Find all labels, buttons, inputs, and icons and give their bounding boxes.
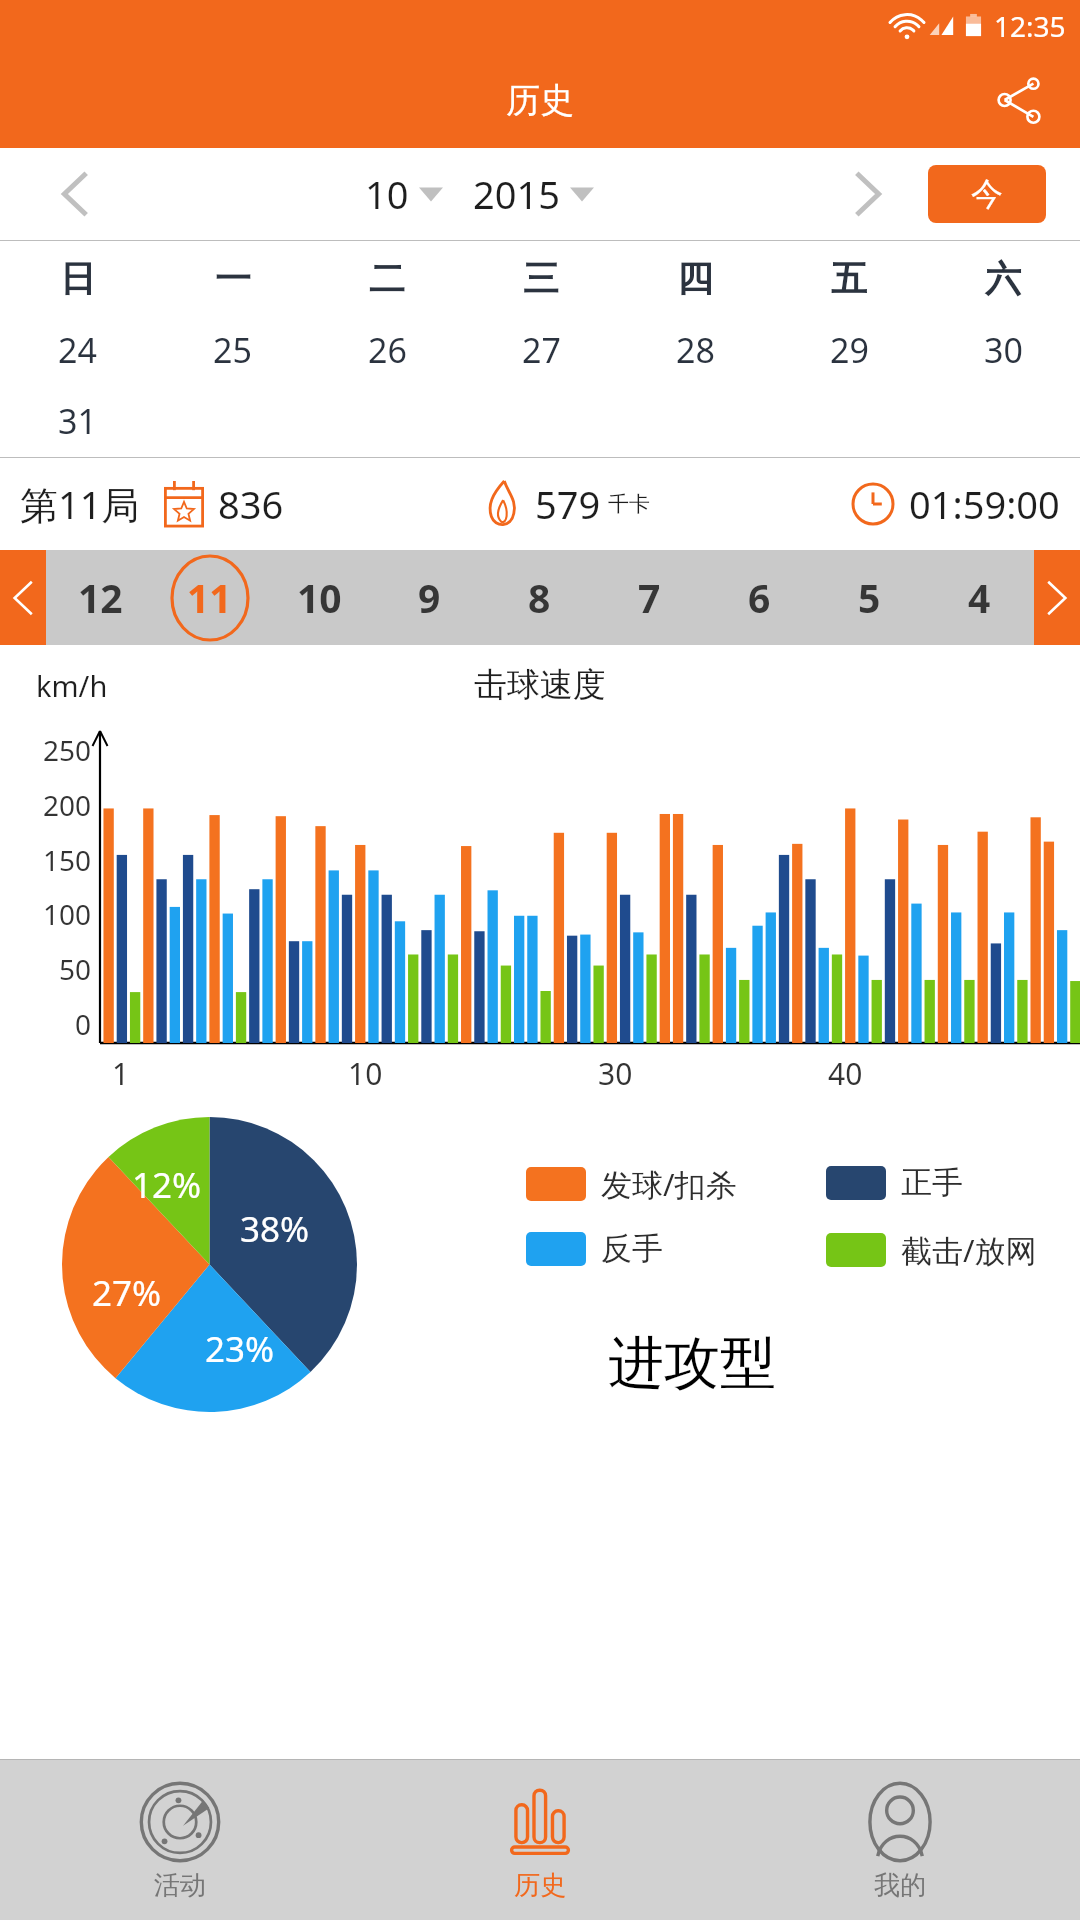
button[interactable]: 8 (484, 550, 594, 645)
button[interactable]: 今 (928, 165, 1046, 223)
staticText: 历史 (514, 1869, 566, 1902)
button[interactable]: 正手 (826, 1163, 1056, 1202)
button[interactable]: 25 (155, 315, 310, 385)
button[interactable]: 5 (814, 550, 924, 645)
staticText: 今 (971, 174, 1003, 214)
staticText: 进攻型 (608, 1328, 776, 1399)
staticText: 4 (968, 571, 991, 624)
staticText: 38% (240, 1205, 310, 1253)
staticText: km/h (36, 666, 108, 705)
staticText: 28 (676, 327, 715, 373)
staticText: 活动 (154, 1869, 206, 1902)
staticText: 正手 (901, 1163, 963, 1202)
staticText: 四 (677, 256, 713, 301)
button[interactable]: 6 (704, 550, 814, 645)
staticText: 40 (828, 1053, 863, 1094)
staticText: 12% (132, 1161, 202, 1209)
staticText: 11 (187, 571, 232, 624)
staticText: 8 (528, 571, 551, 624)
button[interactable]: 截击/放网 (826, 1229, 1056, 1271)
staticText: 六 (985, 256, 1021, 301)
button[interactable]: 31 (0, 385, 155, 457)
staticText: 7 (638, 571, 661, 624)
staticText: 29 (830, 327, 869, 373)
staticText: 0 (75, 1005, 92, 1043)
staticText: 2015 (473, 168, 560, 220)
staticText: 6 (748, 571, 771, 624)
staticText: 三 (523, 256, 559, 301)
staticText: 历史 (506, 79, 574, 122)
staticText: 二 (369, 256, 405, 301)
button[interactable]: 29 (772, 315, 926, 385)
button[interactable]: 24 (0, 315, 155, 385)
staticText: 26 (368, 327, 407, 373)
staticText: 千卡 (608, 491, 650, 517)
staticText: 9 (418, 571, 441, 624)
button[interactable]: 我的 (720, 1760, 1080, 1920)
staticText: 200 (43, 786, 92, 824)
button[interactable]: 7 (594, 550, 704, 645)
button[interactable]: 12 (46, 550, 155, 645)
staticText: 25 (213, 327, 252, 373)
staticText: 27% (92, 1269, 162, 1317)
staticText: 250 (43, 731, 92, 769)
staticText: 截击/放网 (901, 1229, 1037, 1271)
staticText: 日 (60, 256, 96, 301)
staticText: 第11局 (20, 478, 140, 530)
staticText: 100 (43, 895, 92, 933)
button[interactable]: 10 (264, 550, 374, 645)
staticText: 50 (59, 950, 92, 988)
button[interactable]: 10 (365, 168, 443, 220)
button[interactable]: 11 (155, 550, 264, 645)
button[interactable]: Previous month (0, 148, 150, 240)
button[interactable]: 反手 (526, 1229, 826, 1268)
button[interactable]: 26 (310, 315, 464, 385)
staticText: 23% (205, 1325, 275, 1373)
button[interactable]: 27 (464, 315, 618, 385)
staticText: 30 (984, 327, 1023, 373)
button[interactable]: Previous game (0, 550, 46, 645)
button[interactable]: 28 (618, 315, 772, 385)
button[interactable]: 9 (374, 550, 484, 645)
staticText: 579 (535, 478, 601, 530)
button[interactable]: 30 (926, 315, 1080, 385)
staticText: 10 (348, 1053, 383, 1094)
button[interactable]: 2015 (473, 168, 594, 220)
button[interactable]: 发球/扣杀 (526, 1163, 826, 1205)
staticText: 五 (831, 256, 867, 301)
button[interactable]: 历史 (360, 1760, 720, 1920)
staticText: 我的 (874, 1869, 926, 1902)
staticText: 24 (58, 327, 97, 373)
staticText: 12 (78, 571, 123, 624)
staticText: 击球速度 (474, 664, 606, 706)
staticText: 12:35 (994, 7, 1066, 45)
staticText: 一 (215, 256, 251, 301)
staticText: 150 (43, 841, 92, 879)
staticText: 发球/扣杀 (601, 1163, 737, 1205)
button[interactable]: 活动 (0, 1760, 360, 1920)
staticText: 31 (58, 398, 97, 444)
staticText: 5 (858, 571, 881, 624)
staticText: 836 (218, 478, 284, 530)
staticText: 反手 (601, 1229, 663, 1268)
staticText: 01:59:00 (909, 478, 1060, 530)
button[interactable]: Share (982, 63, 1056, 137)
staticText: 1 (112, 1053, 130, 1094)
staticText: 10 (297, 571, 342, 624)
button[interactable]: Next game (1034, 550, 1080, 645)
button[interactable]: Next month (808, 148, 928, 240)
staticText: 30 (598, 1053, 633, 1094)
button[interactable]: 4 (924, 550, 1034, 645)
staticText: 27 (522, 327, 561, 373)
staticText: 10 (365, 168, 409, 220)
